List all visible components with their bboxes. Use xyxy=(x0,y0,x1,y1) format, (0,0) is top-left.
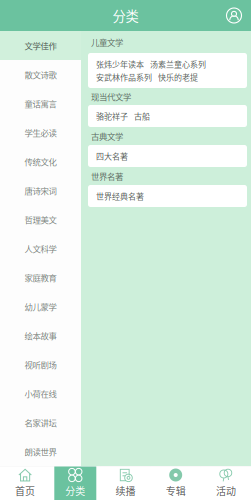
staticText: 人文科学 xyxy=(24,242,56,255)
button[interactable]: 幼儿蒙学 xyxy=(0,292,81,321)
button[interactable]: 散文诗歌 xyxy=(0,60,81,89)
staticText: 快乐的老提 xyxy=(158,71,198,83)
staticText: 古典文学 xyxy=(91,130,123,142)
button[interactable]: 小荷在线 xyxy=(0,379,81,408)
staticText: 童话寓言 xyxy=(24,97,56,110)
staticText: 古船 xyxy=(134,110,150,122)
button[interactable]: 哲理美文 xyxy=(0,205,81,234)
button[interactable]: 传统文化 xyxy=(0,147,81,176)
button[interactable]: 童话寓言 xyxy=(0,89,81,118)
button[interactable]: 视听剧场 xyxy=(0,350,81,379)
staticText: 首页 xyxy=(15,483,35,498)
staticText: 专辑 xyxy=(166,483,186,498)
staticText: 视听剧场 xyxy=(24,358,56,371)
button[interactable]: 唐诗宋词 xyxy=(0,176,81,205)
button[interactable]: 朗读世界 xyxy=(0,437,81,466)
staticText: 现当代文学 xyxy=(91,90,131,103)
staticText: 活动 xyxy=(216,483,236,498)
button[interactable]: 汤素兰童心系列 xyxy=(150,58,206,70)
button[interactable]: 绘本故事 xyxy=(0,321,81,350)
button[interactable]: 文学佳作 xyxy=(0,31,81,60)
staticText: 世界经典名著 xyxy=(96,190,144,202)
button[interactable]: 学生必读 xyxy=(0,118,81,147)
button[interactable]: Account xyxy=(220,1,248,29)
staticText: 小荷在线 xyxy=(24,387,56,400)
button[interactable]: 首页 xyxy=(0,466,50,500)
staticText: 散文诗歌 xyxy=(24,68,56,81)
staticText: 骆驼祥子 xyxy=(96,110,128,122)
staticText: 续播 xyxy=(115,483,135,498)
button[interactable]: 四大名著 xyxy=(96,150,128,162)
button[interactable]: 快乐的老提 xyxy=(158,71,198,83)
button[interactable]: 名家讲坛 xyxy=(0,408,81,437)
staticText: 名家讲坛 xyxy=(24,416,56,429)
staticText: 朗读世界 xyxy=(24,445,56,458)
staticText: 分类 xyxy=(112,6,138,25)
button[interactable]: 专辑 xyxy=(151,466,201,500)
button[interactable]: 活动 xyxy=(201,466,251,500)
staticText: 汤素兰童心系列 xyxy=(150,58,206,70)
staticText: 唐诗宋词 xyxy=(24,184,56,197)
button[interactable]: 骆驼祥子 xyxy=(96,110,128,122)
staticText: 家庭教育 xyxy=(24,271,56,284)
staticText: 文学佳作 xyxy=(24,39,56,52)
staticText: 哲理美文 xyxy=(24,213,56,226)
staticText: 儿童文学 xyxy=(91,36,123,48)
button[interactable]: 家庭教育 xyxy=(0,263,81,292)
button[interactable]: 人文科学 xyxy=(0,234,81,263)
staticText: 学生必读 xyxy=(24,126,56,139)
staticText: 绘本故事 xyxy=(24,329,56,342)
button[interactable]: 续播 xyxy=(100,466,151,500)
staticText: 安武林作品系列 xyxy=(96,71,152,83)
button[interactable]: 张炜少年读本 xyxy=(96,58,144,70)
button[interactable]: 安武林作品系列 xyxy=(96,71,152,83)
staticText: 世界名著 xyxy=(91,170,123,182)
staticText: 传统文化 xyxy=(24,155,56,168)
button[interactable]: 古船 xyxy=(134,110,150,122)
staticText: 四大名著 xyxy=(96,150,128,162)
button[interactable]: 分类 xyxy=(50,466,100,500)
button[interactable]: 世界经典名著 xyxy=(96,190,144,202)
staticText: 幼儿蒙学 xyxy=(24,300,56,313)
staticText: 张炜少年读本 xyxy=(96,58,144,70)
staticText: 分类 xyxy=(65,483,85,498)
